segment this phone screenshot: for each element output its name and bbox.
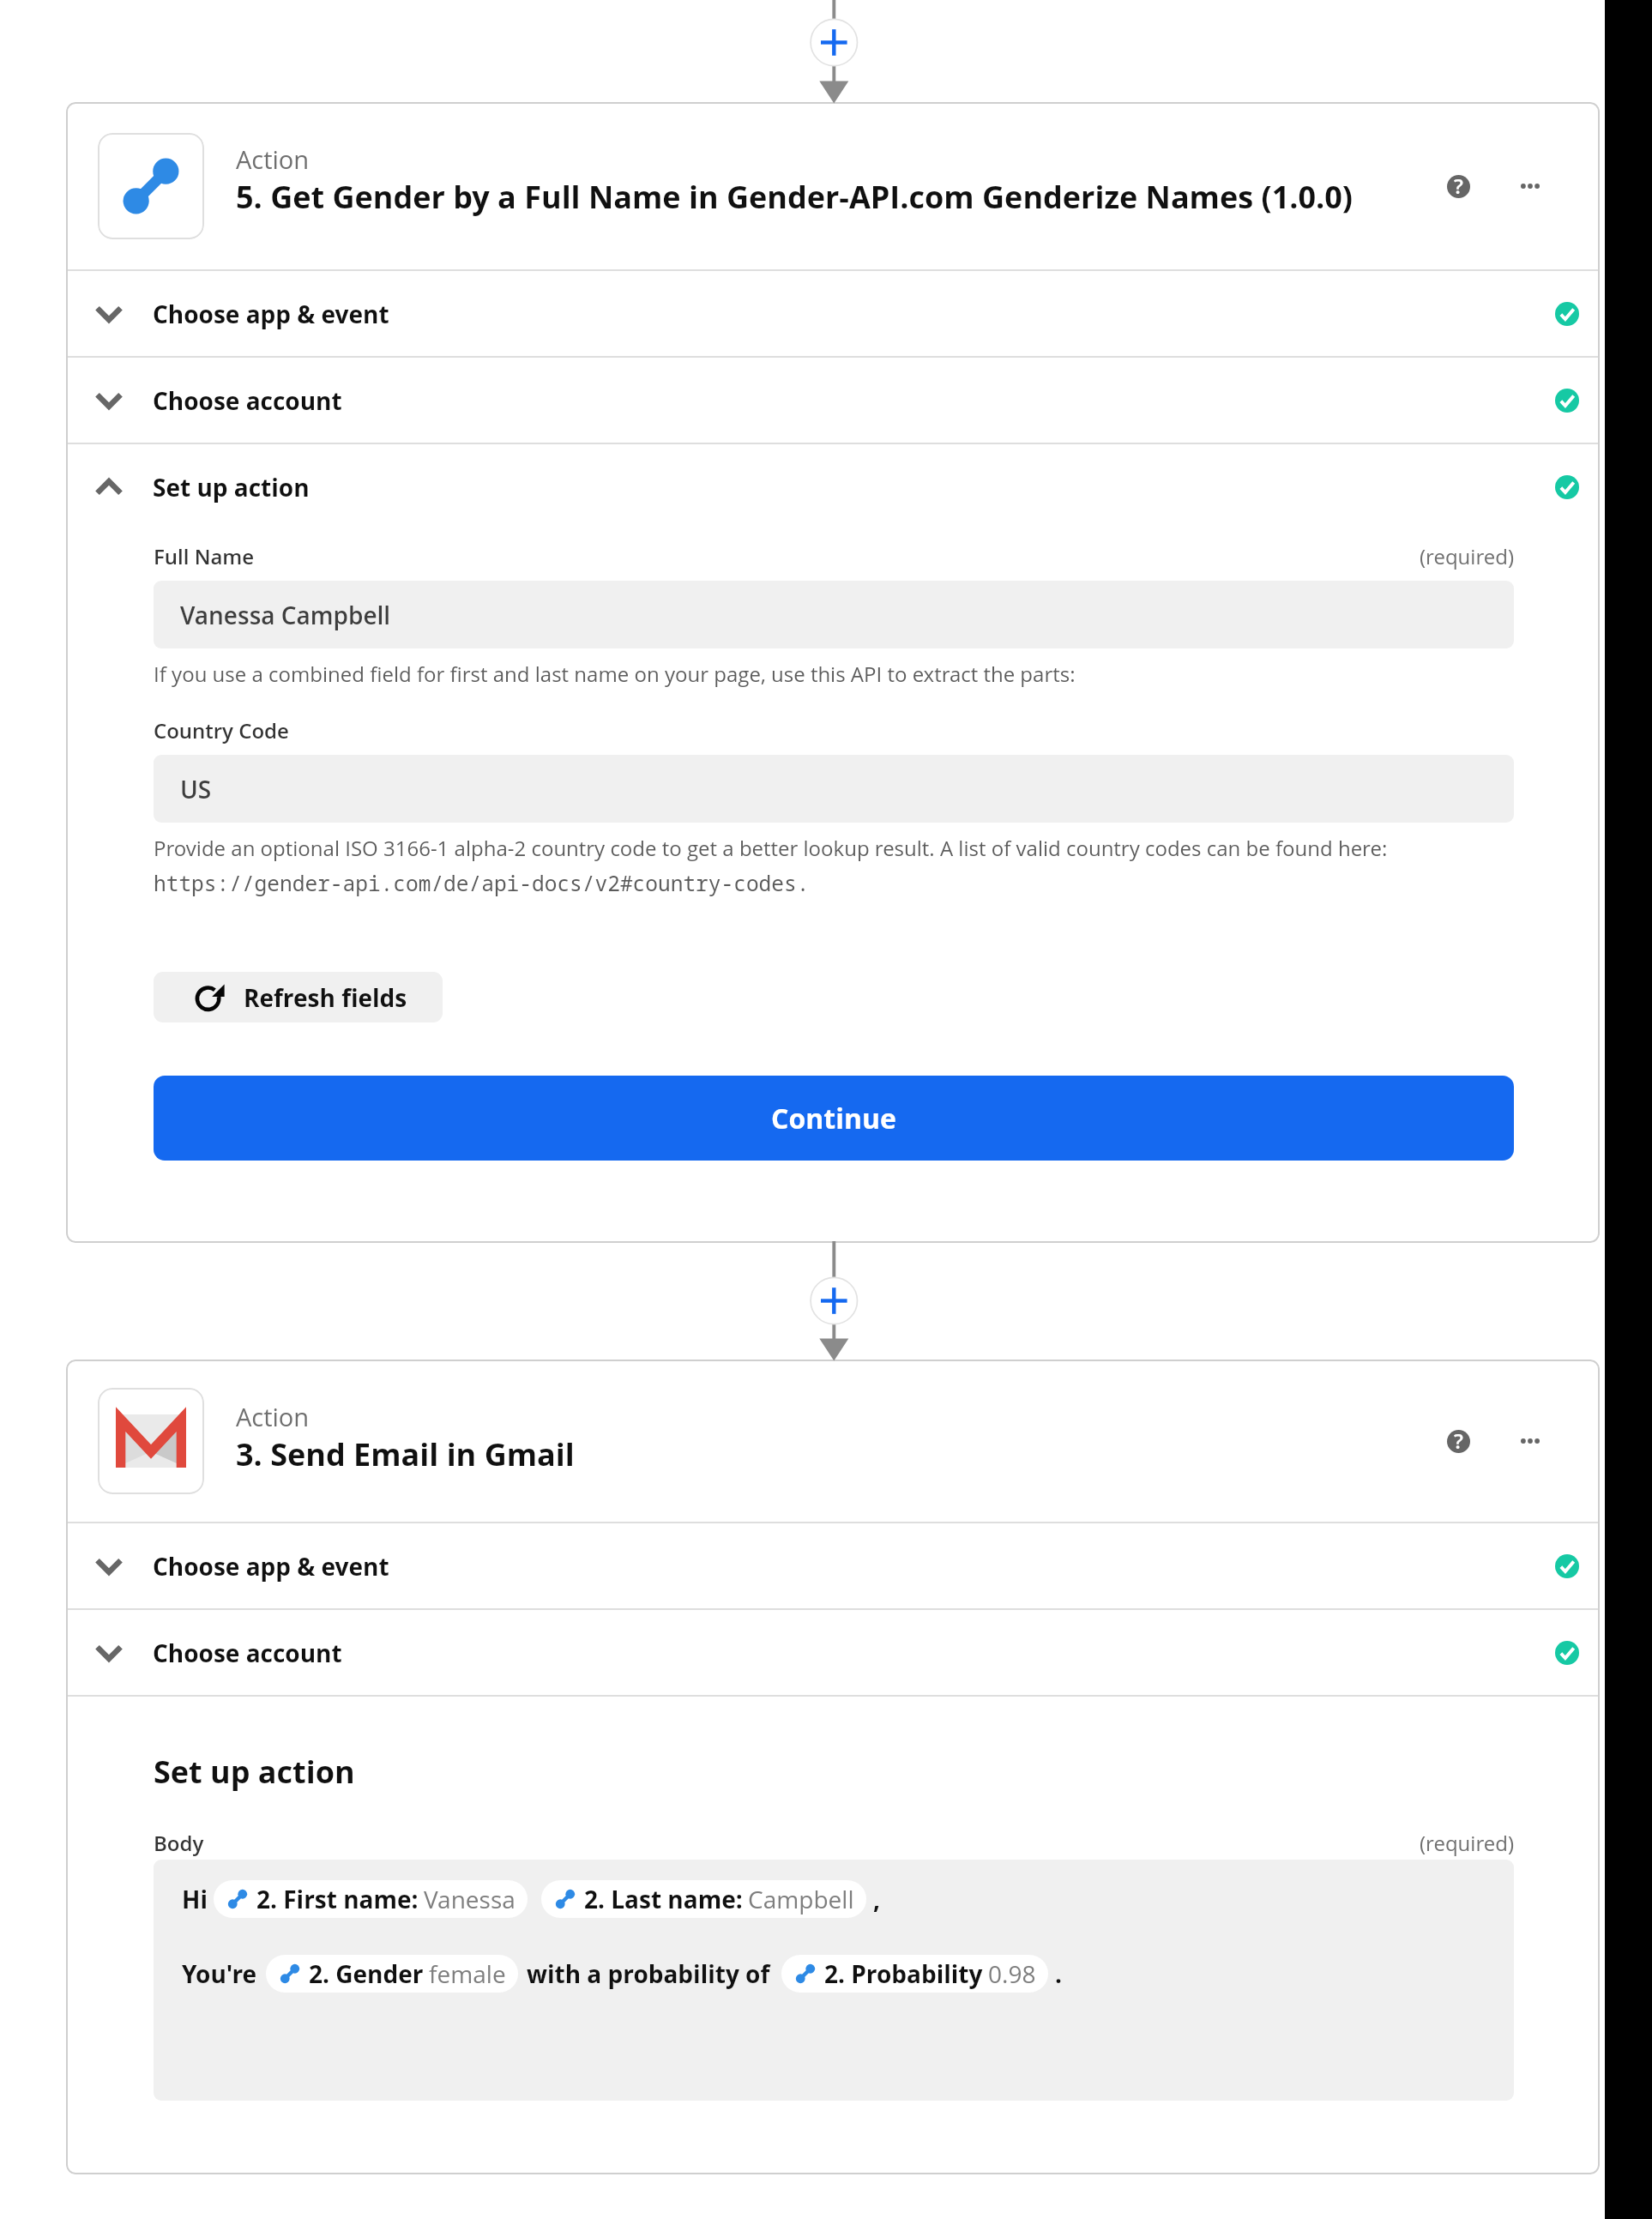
staticText: 0.98 [988,1957,1036,1990]
staticText: 2. First name: [256,1883,419,1915]
staticText: Refresh fields [244,981,407,1014]
staticText: US [180,773,212,805]
staticText: (required) [1420,1829,1514,1857]
staticText: ? [1454,1426,1463,1455]
staticText: 5. Get Gender by a Full Name in Gender-A… [236,176,1354,218]
staticText: Set up action [154,1751,355,1793]
button[interactable]: Help [1433,161,1483,211]
staticText: Action [236,1400,310,1433]
button[interactable]: Refresh fields [154,972,443,1022]
staticText: Vanessa [424,1883,515,1915]
staticText: 2. Last name: [584,1883,743,1915]
button[interactable]: Choose app & event [66,1523,1600,1608]
button[interactable]: Help [1433,1416,1483,1466]
button[interactable]: Choose account [66,1610,1600,1695]
staticText: Campbell [748,1883,854,1915]
button[interactable]: Set up action [66,444,1600,529]
staticText: If you use a combined field for first an… [154,660,1076,688]
staticText: . [1055,1957,1062,1990]
staticText: https://gender-api.com/de/api-docs/v2#co… [154,869,810,897]
button[interactable]: Choose account [66,358,1600,443]
button[interactable]: Choose app & event [66,271,1600,356]
staticText: with a probability of [527,1957,770,1990]
button[interactable]: More options [1505,161,1555,211]
staticText: Choose account [153,384,342,417]
staticText: , [873,1883,881,1915]
staticText: 2. Probability [824,1957,983,1990]
staticText: You're [182,1957,257,1990]
staticText: Provide an optional ISO 3166-1 alpha-2 c… [154,834,1388,862]
staticText: Choose app & event [153,1550,389,1583]
staticText: 3. Send Email in Gmail [236,1433,575,1475]
staticText: ? [1454,172,1463,200]
button[interactable]: Vanessa Campbell [154,581,1514,648]
button[interactable]: US [154,755,1514,823]
staticText: Set up action [153,471,310,503]
staticText: Body [154,1829,204,1857]
button[interactable]: Add a step [811,19,858,66]
staticText: 2. Gender [309,1957,424,1990]
staticText: Vanessa Campbell [180,599,391,631]
staticText: Choose account [153,1637,342,1669]
staticText: Action [236,142,310,176]
staticText: (required) [1420,542,1514,570]
button[interactable]: Add a step [811,1277,858,1324]
staticText: Country Code [154,716,289,745]
button[interactable]: Continue [154,1076,1514,1161]
staticText: Hi [182,1883,208,1915]
button[interactable]: More options [1505,1416,1555,1466]
staticText: Full Name [154,542,255,570]
staticText: Continue [771,1100,896,1137]
staticText: Choose app & event [153,298,389,330]
button[interactable]: Hi [154,1860,1514,2101]
staticText: female [429,1957,506,1990]
